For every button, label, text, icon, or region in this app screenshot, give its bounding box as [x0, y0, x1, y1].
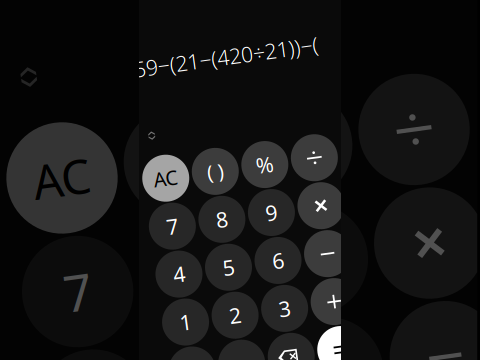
staticText: 1	[159, 301, 171, 330]
staticText: 8	[211, 202, 223, 231]
button[interactable]: plus	[291, 292, 338, 339]
button[interactable]: 2	[193, 290, 240, 337]
button[interactable]: 3	[241, 292, 288, 339]
button[interactable]: 0	[143, 338, 190, 360]
button[interactable]: 4	[141, 244, 188, 291]
staticText: 7	[161, 202, 173, 231]
button[interactable]: 5	[193, 241, 240, 288]
button[interactable]: .	[193, 338, 240, 360]
button[interactable]: 7	[143, 193, 190, 240]
button[interactable]: AC	[141, 147, 188, 194]
staticText: 3	[259, 301, 271, 330]
staticText: 1	[161, 299, 173, 327]
staticText: %	[258, 154, 276, 182]
button[interactable]: ( )	[193, 145, 240, 192]
button[interactable]: 5	[191, 244, 238, 291]
staticText: 9	[261, 202, 273, 231]
staticText: ( )	[206, 157, 223, 184]
button[interactable]: 3	[243, 290, 290, 337]
button[interactable]: delete	[241, 340, 288, 360]
button[interactable]: %	[243, 145, 290, 192]
staticText: 7	[159, 204, 171, 233]
staticText: 3	[261, 299, 273, 327]
button[interactable]: multiply	[293, 193, 340, 240]
staticText: %	[256, 156, 274, 184]
staticText: 4	[161, 251, 173, 279]
button[interactable]: 6	[241, 244, 288, 291]
button[interactable]: %	[241, 147, 288, 194]
staticText: 59−(21−(420÷21))−(	[148, 44, 334, 72]
button[interactable]: 6	[243, 241, 290, 288]
button[interactable]: delete	[243, 338, 290, 360]
staticText: 4	[159, 253, 171, 281]
button[interactable]: 9	[241, 195, 288, 242]
staticText: AC	[154, 155, 179, 181]
staticText: 8	[209, 204, 221, 233]
button[interactable]: 2	[191, 292, 238, 339]
button[interactable]: 1	[141, 292, 188, 339]
button[interactable]: equals	[291, 340, 338, 360]
button[interactable]: ( )	[191, 147, 238, 194]
button[interactable]: plus	[293, 290, 340, 337]
staticText: .	[214, 347, 220, 360]
staticText: ( )	[208, 155, 225, 181]
button[interactable]: 7	[141, 195, 188, 242]
staticText: AC	[152, 157, 177, 184]
button[interactable]: minus	[291, 244, 338, 291]
staticText: 9	[259, 204, 271, 233]
staticText: 2	[209, 301, 221, 330]
staticText: 6	[259, 253, 271, 281]
button[interactable]: divide	[291, 147, 338, 194]
button[interactable]: 8	[191, 195, 238, 242]
button[interactable]: 1	[143, 290, 190, 337]
staticText: 2	[211, 299, 223, 327]
staticText: .	[212, 350, 218, 360]
button[interactable]: 0	[141, 340, 188, 360]
button[interactable]: 4	[143, 241, 190, 288]
button[interactable]: multiply	[291, 195, 338, 242]
button[interactable]: equals	[293, 338, 340, 360]
button[interactable]: 9	[243, 193, 290, 240]
button[interactable]: .	[191, 340, 238, 360]
staticText: 0	[161, 347, 173, 360]
button[interactable]: 8	[193, 193, 240, 240]
button[interactable]: divide	[293, 145, 340, 192]
button[interactable]: minus	[293, 241, 340, 288]
staticText: 59−(21−(420÷21))−(	[150, 42, 336, 70]
button[interactable]: AC	[143, 145, 190, 192]
